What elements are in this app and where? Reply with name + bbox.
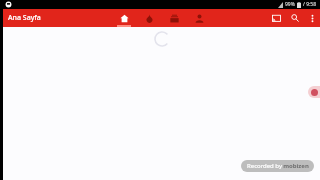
staticText: / 9:58 [303, 1, 317, 8]
staticText: 99% [285, 1, 295, 8]
button[interactable]: Subscriptions [167, 9, 181, 27]
staticText: Recorded by [246, 162, 283, 170]
button[interactable]: More options [307, 13, 317, 23]
button[interactable]: Trending [142, 9, 156, 27]
button[interactable]: Mobizen recorder [308, 86, 320, 98]
button[interactable]: Cast [269, 11, 283, 25]
staticText: Ana Sayfa [8, 13, 41, 23]
button[interactable]: Account [192, 9, 206, 27]
staticText: mobizen [283, 162, 309, 170]
button[interactable]: Search [288, 11, 302, 25]
button[interactable]: Home [117, 9, 131, 27]
